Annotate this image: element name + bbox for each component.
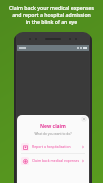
button[interactable]: Report a hospitalisation	[17, 140, 89, 153]
staticText: New claim	[40, 123, 66, 130]
button[interactable]: Claim back medical expenses	[17, 154, 89, 167]
staticText: and report a hospital admission	[8, 11, 95, 18]
staticText: Claim back your medical expenses	[8, 4, 95, 11]
staticText: What do you want to do?	[34, 132, 72, 136]
button[interactable]: Close	[81, 116, 87, 122]
staticText: in the blink of an eye	[8, 18, 95, 25]
staticText: Claim back medical expenses	[32, 158, 81, 163]
staticText: Report a hospitalisation	[32, 144, 81, 149]
